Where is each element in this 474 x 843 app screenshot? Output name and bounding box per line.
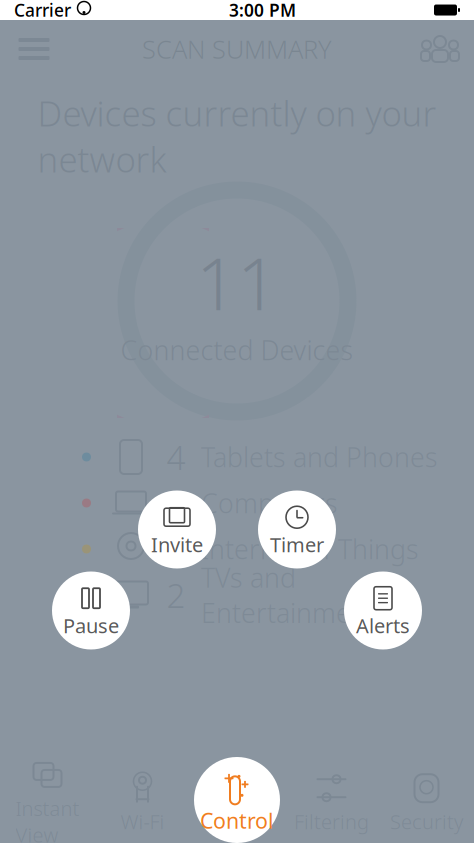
staticText: 4 <box>166 435 185 479</box>
staticText: SCAN SUMMARY <box>142 32 332 66</box>
button[interactable]: Invite <box>138 490 216 568</box>
button[interactable]: Menu <box>8 27 60 71</box>
staticText: Timer <box>270 531 324 558</box>
staticText: Tablets and Phones <box>201 439 438 475</box>
button[interactable]: Users <box>414 27 466 71</box>
staticText: 11 <box>196 234 278 330</box>
staticText: Invite <box>151 531 203 558</box>
staticText: Computers <box>201 485 338 521</box>
staticText: Control <box>200 806 274 835</box>
staticText: TVs and Entertainment <box>201 560 376 630</box>
staticText: Internet of Things <box>201 531 419 567</box>
button[interactable]: Alerts <box>344 571 422 649</box>
staticText: Pause <box>63 612 119 639</box>
staticText: Alerts <box>356 612 410 639</box>
staticText: 3:00 PM <box>229 0 296 21</box>
staticText: Carrier <box>14 0 71 21</box>
staticText: Connected Devices <box>120 332 353 367</box>
button[interactable]: Pause <box>52 571 130 649</box>
staticText: Devices currently on your network <box>37 90 436 182</box>
staticText: 2 <box>166 573 185 617</box>
staticText: 2 <box>166 527 185 571</box>
staticText: 3 <box>166 481 185 525</box>
button[interactable]: Control <box>194 757 280 843</box>
button[interactable]: Timer <box>258 490 336 568</box>
